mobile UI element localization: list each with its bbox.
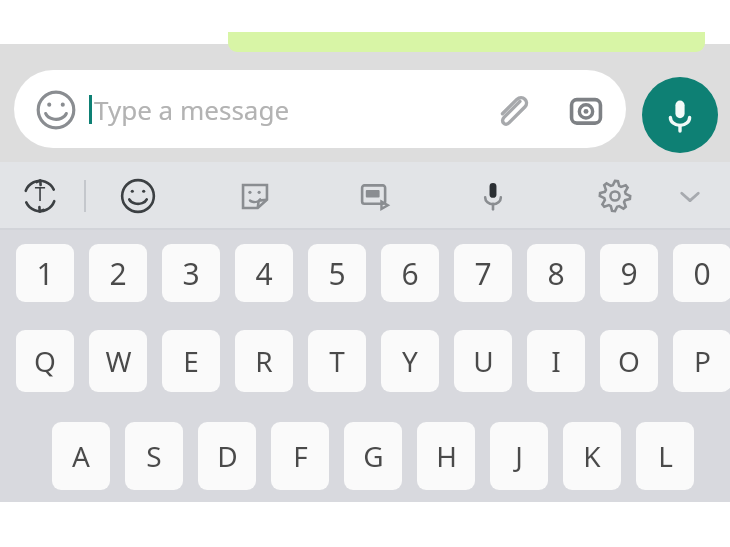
staticText: W (105, 342, 132, 380)
button[interactable]: Hide keyboard (667, 173, 713, 219)
staticText: 5 (328, 253, 346, 294)
button[interactable]: Record voice message (642, 77, 718, 153)
button[interactable]: 3 (162, 244, 220, 302)
button[interactable]: Stickers (232, 173, 278, 219)
staticText: 1 (36, 253, 54, 294)
staticText: K (583, 437, 601, 475)
staticText: 2 (109, 253, 127, 294)
staticText: I (551, 342, 561, 380)
staticText: T (33, 181, 47, 207)
button[interactable]: Y (381, 330, 439, 392)
staticText: 9 (620, 253, 638, 294)
button[interactable]: W (89, 330, 147, 392)
button[interactable]: S (125, 422, 183, 490)
button[interactable]: Emoji (14, 70, 626, 148)
button[interactable]: K (563, 422, 621, 490)
button[interactable]: L (636, 422, 694, 490)
staticText: U (473, 342, 494, 380)
staticText: G (363, 437, 384, 475)
button[interactable]: O (600, 330, 658, 392)
button[interactable]: R (235, 330, 293, 392)
button[interactable]: 1 (16, 244, 74, 302)
button[interactable]: 7 (454, 244, 512, 302)
button[interactable]: Q (16, 330, 74, 392)
button[interactable]: Voice input (470, 173, 516, 219)
button[interactable]: 9 (600, 244, 658, 302)
staticText: L (658, 437, 673, 475)
button[interactable]: 6 (381, 244, 439, 302)
button[interactable]: A (52, 422, 110, 490)
staticText: J (515, 437, 523, 475)
button[interactable]: 2 (89, 244, 147, 302)
button[interactable]: E (162, 330, 220, 392)
button[interactable]: J (490, 422, 548, 490)
staticText: O (618, 342, 640, 380)
button[interactable]: Attach (492, 91, 532, 131)
button[interactable]: GIF (352, 173, 398, 219)
button[interactable]: 5 (308, 244, 366, 302)
button[interactable]: D (198, 422, 256, 490)
button[interactable]: 8 (527, 244, 585, 302)
staticText: F (293, 437, 308, 475)
button[interactable]: Emoji (115, 173, 161, 219)
staticText: E (183, 342, 199, 380)
button[interactable]: F (271, 422, 329, 490)
button[interactable]: G (344, 422, 402, 490)
button[interactable]: Translate (17, 173, 63, 219)
staticText: 7 (474, 253, 492, 294)
staticText: 4 (255, 253, 273, 294)
button[interactable]: U (454, 330, 512, 392)
staticText: H (436, 437, 457, 475)
button[interactable]: I (527, 330, 585, 392)
staticText: 0 (693, 253, 711, 294)
staticText: Q (34, 342, 56, 380)
staticText: Y (402, 342, 418, 380)
staticText: S (146, 437, 162, 475)
staticText: A (72, 437, 90, 475)
button[interactable]: T (308, 330, 366, 392)
staticText: 8 (547, 253, 565, 294)
button[interactable]: Camera (567, 92, 605, 130)
button[interactable]: H (417, 422, 475, 490)
button[interactable]: Emoji (36, 90, 76, 130)
staticText: D (217, 437, 238, 475)
button[interactable]: P (673, 330, 730, 392)
button[interactable]: 0 (673, 244, 730, 302)
staticText: Type a message (94, 92, 290, 127)
staticText: 3 (182, 253, 200, 294)
button[interactable]: Settings (592, 173, 638, 219)
staticText: 6 (401, 253, 419, 294)
staticText: P (694, 342, 711, 380)
button[interactable]: 4 (235, 244, 293, 302)
staticText: T (329, 342, 345, 380)
staticText: R (255, 342, 273, 380)
